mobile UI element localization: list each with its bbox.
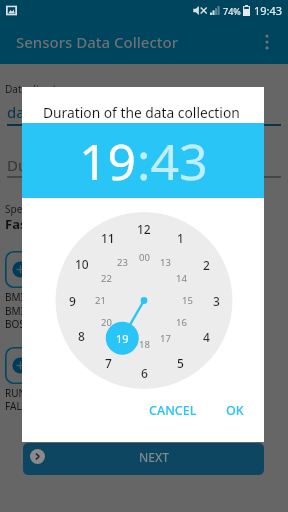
staticText: BMI160 Gyroscope [5,304,94,318]
button[interactable]: CANCEL [143,397,203,424]
staticText: FALLING [5,399,46,413]
button[interactable]: 10 [75,256,89,272]
staticText: Data directory name: [5,82,104,96]
button[interactable]: 20 [101,316,112,329]
staticText: Sensors Data Collector [16,32,179,52]
button[interactable]: 11 [101,230,115,246]
staticText: BOSCH Magnetometer [5,317,112,331]
button[interactable]: 6 [141,365,148,381]
staticText: :43 [137,127,208,195]
button[interactable]: 00 [139,251,150,264]
button[interactable]: Add sensor [5,251,41,288]
staticText: Fastest [5,215,53,233]
button[interactable]: Next [30,449,45,464]
button[interactable]: 19 [116,331,129,346]
button[interactable]: 22 [101,272,112,285]
button[interactable]: 21 [95,294,106,307]
button[interactable]: Next [23,443,264,475]
button[interactable]: 5 [177,355,184,371]
button[interactable]: 4 [203,329,210,345]
staticText: 19 [79,127,137,195]
button[interactable]: Add activity [5,347,41,384]
button[interactable]: 23 [117,256,128,269]
staticText: data_1 [7,102,54,122]
button[interactable]: More options [252,27,282,57]
button[interactable]: 14 [176,272,187,285]
staticText: 19:43 [254,3,283,18]
staticText: NEXT [139,449,170,465]
button[interactable]: 2 [203,257,210,273]
button[interactable]: OK [220,397,250,424]
staticText: Specify sampling rate [5,202,106,216]
button[interactable]: 8 [78,328,85,344]
staticText: CANCEL [149,402,197,419]
button[interactable]: 3 [213,293,220,309]
button[interactable]: 17 [160,332,171,345]
staticText: RUNNING [5,386,52,400]
staticText: OK [226,402,244,419]
button[interactable]: 15 [182,294,193,307]
staticText: 74% [223,5,241,17]
button[interactable]: 18 [139,338,150,351]
staticText: Duration [7,155,70,175]
button[interactable]: 13 [160,256,171,269]
button[interactable]: 7 [105,355,112,371]
button[interactable]: 9 [69,293,76,309]
staticText: Duration of the data collection [43,103,240,122]
button[interactable]: 12 [137,221,151,237]
button[interactable]: 16 [176,316,187,329]
button[interactable]: 1 [177,230,184,246]
button[interactable]: 19 [22,123,264,198]
staticText: BMI160 Accelerometer [5,290,112,304]
